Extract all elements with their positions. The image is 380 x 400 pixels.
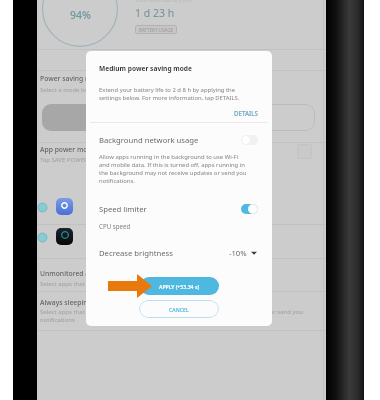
button[interactable]: BATTERY USAGE bbox=[135, 25, 177, 34]
staticText: BATTERY USAGE bbox=[139, 27, 173, 33]
staticText: Medium power saving mode bbox=[99, 64, 192, 73]
staticText: Extend your battery life to 2 d 8 h by a… bbox=[99, 86, 247, 102]
button[interactable]: Background network usage bbox=[86, 132, 272, 148]
button[interactable]: DETAILS bbox=[232, 108, 260, 118]
staticText: Estimated battery life bbox=[136, 0, 192, 3]
staticText: CANCEL bbox=[169, 306, 189, 313]
staticText: DETAILS bbox=[234, 109, 258, 117]
staticText: 94% bbox=[70, 8, 91, 22]
staticText: 1 d 23 h bbox=[135, 6, 175, 20]
staticText: Speed limiter bbox=[99, 204, 241, 214]
button[interactable] bbox=[42, 104, 152, 131]
staticText: Select a mode below bbox=[40, 86, 98, 94]
staticText: Always sleeping apps bbox=[40, 298, 110, 307]
staticText: Power saving mode bbox=[40, 74, 104, 83]
staticText: App power monitor bbox=[40, 145, 104, 154]
button[interactable]: CANCEL bbox=[139, 300, 219, 318]
button[interactable] bbox=[157, 104, 315, 131]
staticText: -10% bbox=[229, 248, 247, 258]
staticText: Allow apps running in the background to … bbox=[99, 153, 247, 185]
button[interactable]: APPLY (+53.34 s) bbox=[140, 277, 219, 295]
staticText: Decrease brightness bbox=[99, 248, 229, 258]
staticText: Select apps that will never run in the b… bbox=[40, 308, 303, 324]
staticText: APPLY (+53.34 s) bbox=[159, 283, 200, 290]
staticText: Tap SAVE POWER to close apps running in … bbox=[40, 156, 204, 164]
button[interactable]: Speed limiter bbox=[86, 201, 272, 217]
staticText: CPU speed bbox=[99, 222, 131, 230]
button[interactable]: Decrease brightness bbox=[86, 245, 272, 261]
staticText: Select apps that are not put to sleep bbox=[40, 280, 142, 288]
staticText: Background network usage bbox=[99, 135, 241, 145]
staticText: Unmonitored apps bbox=[40, 269, 101, 278]
